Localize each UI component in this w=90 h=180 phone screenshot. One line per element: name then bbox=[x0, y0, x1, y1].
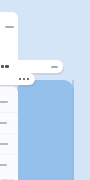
button[interactable] bbox=[0, 134, 18, 155]
button[interactable] bbox=[17, 80, 74, 180]
button[interactable] bbox=[0, 60, 63, 73]
button[interactable] bbox=[0, 113, 18, 134]
button[interactable]: More options bbox=[0, 73, 35, 85]
button[interactable] bbox=[0, 155, 18, 176]
button[interactable] bbox=[0, 92, 18, 113]
button[interactable]: Files bbox=[1, 179, 14, 180]
